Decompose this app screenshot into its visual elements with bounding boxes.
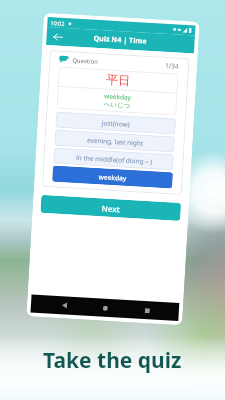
button[interactable]: Home bbox=[95, 298, 114, 317]
staticText: Next bbox=[101, 202, 121, 214]
staticText: Question bbox=[72, 56, 98, 66]
button[interactable]: just(now) bbox=[55, 112, 176, 135]
staticText: in the middle(of doing～) bbox=[75, 153, 153, 166]
button[interactable]: in the middle(of doing～) bbox=[53, 147, 174, 170]
staticText: へいじつ bbox=[103, 100, 131, 110]
staticText: evening, last night bbox=[86, 135, 144, 148]
button[interactable]: Next bbox=[40, 195, 181, 221]
button[interactable]: evening, last night bbox=[54, 130, 175, 153]
staticText: Quiz N4 | Time bbox=[93, 34, 148, 47]
staticText: 10:02 bbox=[50, 19, 66, 27]
staticText: weekday bbox=[98, 172, 127, 183]
button[interactable]: weekday bbox=[52, 165, 173, 188]
button[interactable]: Back bbox=[54, 296, 73, 315]
staticText: 1/34 bbox=[165, 61, 179, 71]
staticText: just(now) bbox=[101, 118, 130, 129]
staticText: weekday bbox=[104, 91, 131, 102]
staticText: 平日 bbox=[106, 71, 131, 88]
staticText: Take the quiz bbox=[43, 346, 182, 375]
button[interactable]: Recents bbox=[137, 301, 156, 320]
button[interactable]: Back bbox=[50, 29, 65, 44]
